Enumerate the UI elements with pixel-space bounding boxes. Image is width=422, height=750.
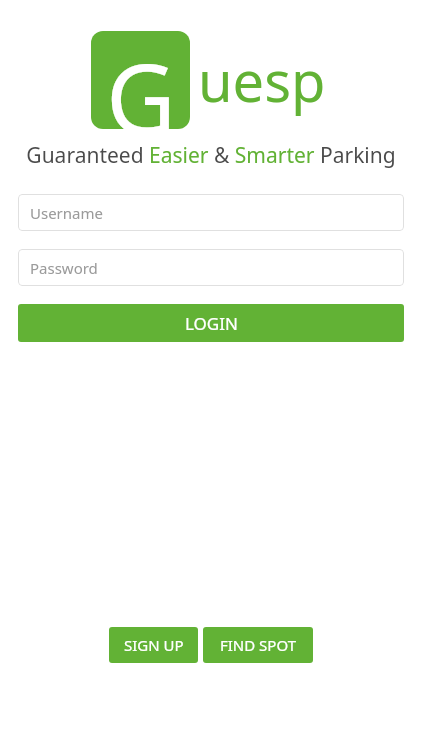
staticText: G	[106, 31, 176, 129]
button[interactable]: SIGN UP	[109, 627, 198, 663]
button[interactable]: LOGIN	[18, 304, 404, 342]
staticText: Guaranteed Easier & Smarter Parking	[0, 141, 422, 170]
staticText: SIGN UP	[124, 635, 184, 655]
button[interactable]: Password	[18, 249, 404, 286]
staticText: Password	[30, 258, 98, 278]
button[interactable]: Username	[18, 194, 404, 231]
staticText: FIND SPOT	[220, 635, 297, 655]
staticText: Username	[30, 203, 103, 223]
staticText: uesp	[198, 42, 326, 118]
button[interactable]: FIND SPOT	[203, 627, 313, 663]
staticText: LOGIN	[185, 312, 238, 335]
